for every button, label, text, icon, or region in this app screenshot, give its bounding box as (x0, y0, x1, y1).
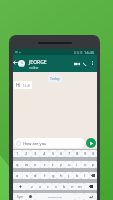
staticText: Today (50, 76, 60, 81)
staticText: u (68, 162, 71, 167)
staticText: 14:40 (23, 84, 31, 88)
button[interactable]: j (65, 172, 73, 179)
staticText: y (60, 162, 63, 167)
button[interactable]: a (13, 172, 22, 179)
button[interactable]: c (44, 183, 52, 190)
button[interactable]: 1 (13, 150, 22, 157)
button[interactable]: w (22, 161, 31, 168)
staticText: z (31, 184, 33, 189)
button[interactable]: l (81, 172, 89, 179)
staticText: o (84, 162, 87, 167)
button[interactable]: m (76, 183, 84, 190)
button[interactable]: Backspace (89, 172, 97, 179)
button[interactable]: 9 (81, 150, 89, 157)
staticText: 6 (60, 151, 63, 156)
button[interactable]: z (27, 183, 36, 190)
staticText: l (84, 173, 86, 178)
staticText: 1 (16, 151, 19, 156)
staticText: c (47, 184, 49, 189)
staticText: e (34, 162, 37, 167)
button[interactable]: 4 (40, 150, 49, 157)
button[interactable]: Video call (73, 60, 80, 67)
button[interactable]: Today (48, 75, 62, 82)
button[interactable]: 8 (73, 150, 81, 157)
button[interactable]: 2 (22, 150, 31, 157)
staticText: . (79, 194, 81, 199)
button[interactable]: d (31, 172, 40, 179)
staticText: j (68, 173, 70, 178)
staticText: b (63, 184, 66, 189)
button[interactable]: Emoji (26, 193, 35, 200)
staticText: 4 (43, 151, 46, 156)
button[interactable]: Profile photo (18, 60, 25, 67)
button[interactable]: 5 (49, 150, 57, 157)
button[interactable]: . (75, 193, 84, 200)
button[interactable]: r (40, 161, 49, 168)
button[interactable]: b (60, 183, 68, 190)
button[interactable]: p (89, 161, 97, 168)
staticText: JEORGE (29, 59, 47, 66)
button[interactable]: Send (86, 138, 96, 148)
staticText: How are you (23, 141, 47, 146)
staticText: n (71, 184, 74, 189)
button[interactable]: Shift (13, 183, 27, 190)
staticText: g (52, 173, 55, 178)
button[interactable]: h (57, 172, 65, 179)
button[interactable]: u (65, 161, 73, 168)
button[interactable]: e (31, 161, 40, 168)
staticText: 14:45 (84, 50, 95, 55)
button[interactable]: x (36, 183, 44, 190)
staticText: 5 (52, 151, 55, 156)
staticText: English (US) (48, 195, 62, 198)
staticText: Hi (16, 82, 21, 88)
button[interactable]: 3 (31, 150, 40, 157)
staticText: s (26, 173, 28, 178)
button[interactable]: n (68, 183, 76, 190)
button[interactable]: k (73, 172, 81, 179)
staticText: p (92, 162, 95, 167)
staticText: m (78, 184, 82, 189)
button[interactable]: How are you (14, 138, 85, 148)
staticText: online (29, 66, 39, 70)
staticText: f (44, 173, 46, 178)
staticText: r (44, 162, 46, 167)
staticText: a (16, 173, 19, 178)
button[interactable]: JEORGE (29, 59, 47, 70)
button[interactable]: Sym (13, 193, 26, 200)
button[interactable]: 7 (65, 150, 73, 157)
staticText: 3 (34, 151, 37, 156)
staticText: h (60, 173, 63, 178)
staticText: q (16, 162, 19, 167)
button[interactable]: i (73, 161, 81, 168)
staticText: v (55, 184, 58, 189)
button[interactable]: 0 (89, 150, 97, 157)
staticText: x (39, 184, 42, 189)
staticText: i (76, 162, 78, 167)
button[interactable]: Back (13, 60, 18, 65)
button[interactable]: f (40, 172, 49, 179)
button[interactable]: v (52, 183, 60, 190)
staticText: 7 (68, 151, 71, 156)
button[interactable]: q (13, 161, 22, 168)
button[interactable]: Backspace (84, 183, 97, 190)
button[interactable]: Hi (14, 81, 32, 89)
button[interactable]: Space (35, 193, 75, 200)
button[interactable]: o (81, 161, 89, 168)
staticText: w (25, 162, 29, 167)
staticText: 0 (92, 151, 95, 156)
button[interactable]: More options (89, 60, 95, 66)
staticText: d (34, 173, 37, 178)
button[interactable]: 6 (57, 150, 65, 157)
button[interactable]: y (57, 161, 65, 168)
button[interactable]: t (49, 161, 57, 168)
staticText: 9 (84, 151, 87, 156)
staticText: 8 (76, 151, 79, 156)
staticText: k (76, 173, 79, 178)
staticText: 2 (25, 151, 28, 156)
staticText: Sym (17, 195, 23, 199)
button[interactable]: Enter (84, 193, 97, 200)
button[interactable]: Call (81, 60, 88, 67)
button[interactable]: s (22, 172, 31, 179)
staticText: t (52, 162, 54, 167)
button[interactable]: g (49, 172, 57, 179)
